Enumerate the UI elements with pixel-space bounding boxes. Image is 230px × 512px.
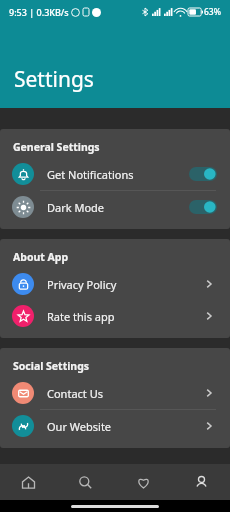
- staticText: General Settings: [13, 140, 100, 154]
- staticText: Settings: [14, 65, 94, 94]
- button[interactable]: Search: [57, 464, 114, 500]
- button[interactable]: Toggle: [189, 200, 217, 214]
- staticText: Get Notifications: [47, 167, 134, 182]
- button[interactable]: Our Website: [0, 410, 230, 442]
- button[interactable]: Open: [201, 276, 217, 292]
- button[interactable]: Open: [201, 308, 217, 324]
- button[interactable]: Profile: [172, 464, 230, 500]
- staticText: Our Website: [47, 419, 112, 434]
- button[interactable]: Home: [0, 464, 57, 500]
- button[interactable]: Open: [201, 418, 217, 434]
- staticText: Rate this app: [47, 309, 115, 324]
- staticText: Privacy Policy: [47, 277, 117, 292]
- button[interactable]: Toggle: [189, 167, 217, 181]
- button[interactable]: Get Notifications: [0, 158, 230, 190]
- button[interactable]: Rate this app: [0, 300, 230, 332]
- staticText: Dark Mode: [47, 200, 105, 215]
- button[interactable]: Favorites: [114, 464, 172, 500]
- button[interactable]: Contact Us: [0, 377, 230, 409]
- button[interactable]: Dark Mode: [0, 191, 230, 223]
- staticText: About App: [13, 250, 69, 264]
- staticText: Contact Us: [47, 386, 103, 401]
- staticText: 63%: [204, 6, 221, 18]
- button[interactable]: Open: [201, 385, 217, 401]
- button[interactable]: Privacy Policy: [0, 268, 230, 300]
- staticText: Social Settings: [13, 359, 90, 373]
- staticText: 9:53 | 0.3KB/s: [9, 6, 69, 18]
